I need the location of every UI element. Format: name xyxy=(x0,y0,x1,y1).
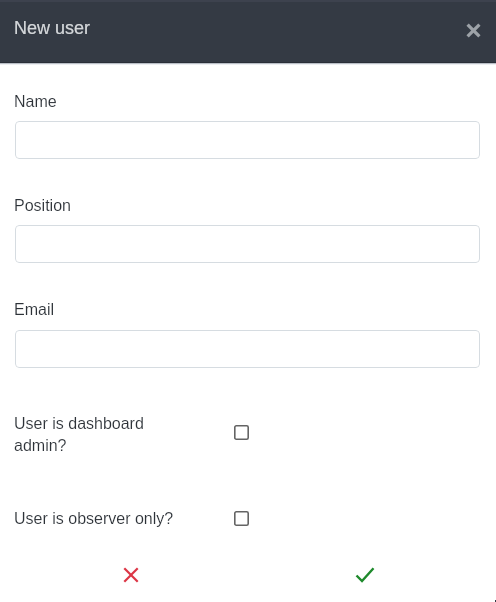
button[interactable]: Cancel xyxy=(111,555,151,595)
button[interactable] xyxy=(15,330,480,368)
staticText: Name xyxy=(14,93,57,111)
button[interactable]: Close xyxy=(453,10,493,50)
button[interactable]: User is observer only xyxy=(228,505,254,531)
button[interactable]: Save xyxy=(345,554,385,594)
staticText: User is dashboard admin? xyxy=(14,415,179,454)
staticText: Email xyxy=(14,301,55,319)
staticText: Position xyxy=(14,197,71,215)
button[interactable] xyxy=(15,121,480,159)
staticText: New user xyxy=(14,18,91,38)
button[interactable] xyxy=(15,225,480,263)
staticText: User is observer only? xyxy=(14,510,174,528)
button[interactable]: User is dashboard admin xyxy=(228,419,254,445)
